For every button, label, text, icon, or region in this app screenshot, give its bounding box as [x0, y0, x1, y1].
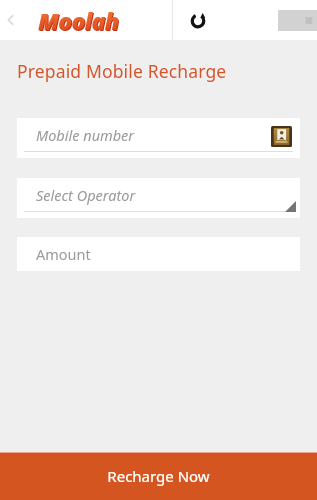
button[interactable]: Mobile number: [17, 118, 300, 158]
button[interactable]: Pick contact: [271, 126, 292, 147]
staticText: Select Operator: [36, 185, 136, 205]
staticText: Mobile number: [36, 125, 135, 145]
staticText: Recharge Now: [107, 466, 210, 486]
button[interactable]: Wallet: [278, 10, 317, 31]
button[interactable]: Refresh: [184, 7, 211, 34]
button[interactable]: Back: [3, 12, 19, 28]
button[interactable]: Select Operator: [17, 178, 300, 218]
button[interactable]: Moolah: [22, 3, 134, 37]
button[interactable]: Recharge Now: [0, 452, 317, 500]
staticText: Prepaid Mobile Recharge: [17, 59, 227, 83]
staticText: Amount: [36, 244, 91, 264]
staticText: Moolah: [38, 5, 119, 36]
staticText: Moolah: [39, 6, 120, 37]
button[interactable]: Amount: [17, 237, 300, 271]
